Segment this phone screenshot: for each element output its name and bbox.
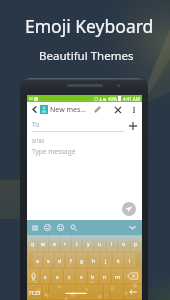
- button[interactable]: e: [50, 236, 59, 251]
- staticText: a: [36, 257, 39, 264]
- button[interactable]: Emoji: [43, 223, 52, 232]
- button[interactable]: x: [52, 269, 62, 283]
- staticText: n: [103, 273, 107, 280]
- button[interactable]: k: [113, 253, 123, 267]
- staticText: v: [80, 273, 83, 280]
- staticText: New mes...: [50, 105, 86, 115]
- button[interactable]: Search: [69, 223, 78, 232]
- staticText: 40%: [108, 96, 117, 102]
- staticText: t: [76, 240, 78, 247]
- staticText: r: [64, 240, 67, 247]
- button[interactable]: More options: [130, 106, 138, 114]
- button[interactable]: Stickers: [56, 223, 65, 232]
- button[interactable]: Back: [30, 105, 39, 114]
- staticText: Emoji Keyboard: [25, 14, 154, 38]
- button[interactable]: Period: [104, 285, 109, 299]
- staticText: i: [111, 240, 113, 247]
- staticText: Beautiful Themes: [39, 48, 134, 64]
- button[interactable]: Comma: [43, 285, 48, 299]
- staticText: y: [87, 240, 90, 247]
- staticText: l: [129, 257, 131, 264]
- staticText: c: [68, 273, 71, 280]
- staticText: d: [58, 257, 62, 264]
- button[interactable]: d: [55, 253, 64, 267]
- button[interactable]: Enter: [125, 285, 141, 299]
- button[interactable]: t: [72, 236, 81, 251]
- staticText: j: [105, 257, 107, 264]
- staticText: g: [80, 257, 84, 264]
- staticText: s: [47, 257, 50, 264]
- button[interactable]: w: [39, 236, 48, 251]
- staticText: h: [92, 257, 96, 264]
- staticText: q: [31, 240, 35, 247]
- button[interactable]: Keyboard menu: [30, 223, 39, 232]
- button[interactable]: p: [131, 236, 141, 251]
- button[interactable]: c: [64, 269, 74, 283]
- staticText: Type message: [32, 147, 76, 156]
- button[interactable]: b: [88, 269, 98, 283]
- staticText: w: [41, 240, 46, 247]
- button[interactable]: Emoji key: [111, 285, 123, 299]
- staticText: .: [106, 289, 108, 296]
- button[interactable]: f: [66, 253, 75, 267]
- button[interactable]: q: [28, 236, 37, 251]
- staticText: x: [56, 273, 59, 280]
- button[interactable]: z: [41, 269, 50, 283]
- staticText: 0/160: [32, 138, 44, 144]
- button[interactable]: j: [101, 253, 111, 267]
- button[interactable]: Edit: [92, 104, 103, 115]
- button[interactable]: v: [76, 269, 86, 283]
- staticText: 4:41 AM: [123, 96, 140, 102]
- staticText: u: [98, 240, 102, 247]
- button[interactable]: Space: [50, 285, 102, 299]
- button[interactable]: h: [89, 253, 99, 267]
- button[interactable]: a: [33, 253, 42, 267]
- button[interactable]: n: [100, 269, 110, 283]
- button[interactable]: l: [125, 253, 135, 267]
- button[interactable]: Shift: [28, 269, 39, 283]
- staticText: p: [134, 240, 138, 247]
- button[interactable]: o: [119, 236, 129, 251]
- button[interactable]: Close: [112, 104, 123, 115]
- button[interactable]: Hide keyboard: [128, 223, 137, 232]
- button[interactable]: y: [83, 236, 93, 251]
- button[interactable]: Add contact: [127, 120, 138, 131]
- button[interactable]: ?123: [28, 285, 41, 299]
- button[interactable]: s: [44, 253, 53, 267]
- button[interactable]: i: [107, 236, 117, 251]
- staticText: o: [122, 240, 126, 247]
- staticText: To: [32, 120, 40, 129]
- staticText: b: [91, 273, 95, 280]
- staticText: f: [70, 257, 72, 264]
- button[interactable]: g: [77, 253, 87, 267]
- button[interactable]: r: [61, 236, 70, 251]
- staticText: m: [115, 273, 120, 280]
- staticText: ,: [45, 289, 47, 296]
- button[interactable]: m: [112, 269, 122, 283]
- button[interactable]: u: [95, 236, 105, 251]
- button[interactable]: Backspace: [124, 269, 141, 283]
- staticText: k: [117, 257, 120, 264]
- button[interactable]: Send: [122, 202, 136, 216]
- staticText: e: [53, 240, 56, 247]
- staticText: z: [44, 273, 47, 280]
- staticText: ?123: [29, 289, 41, 296]
